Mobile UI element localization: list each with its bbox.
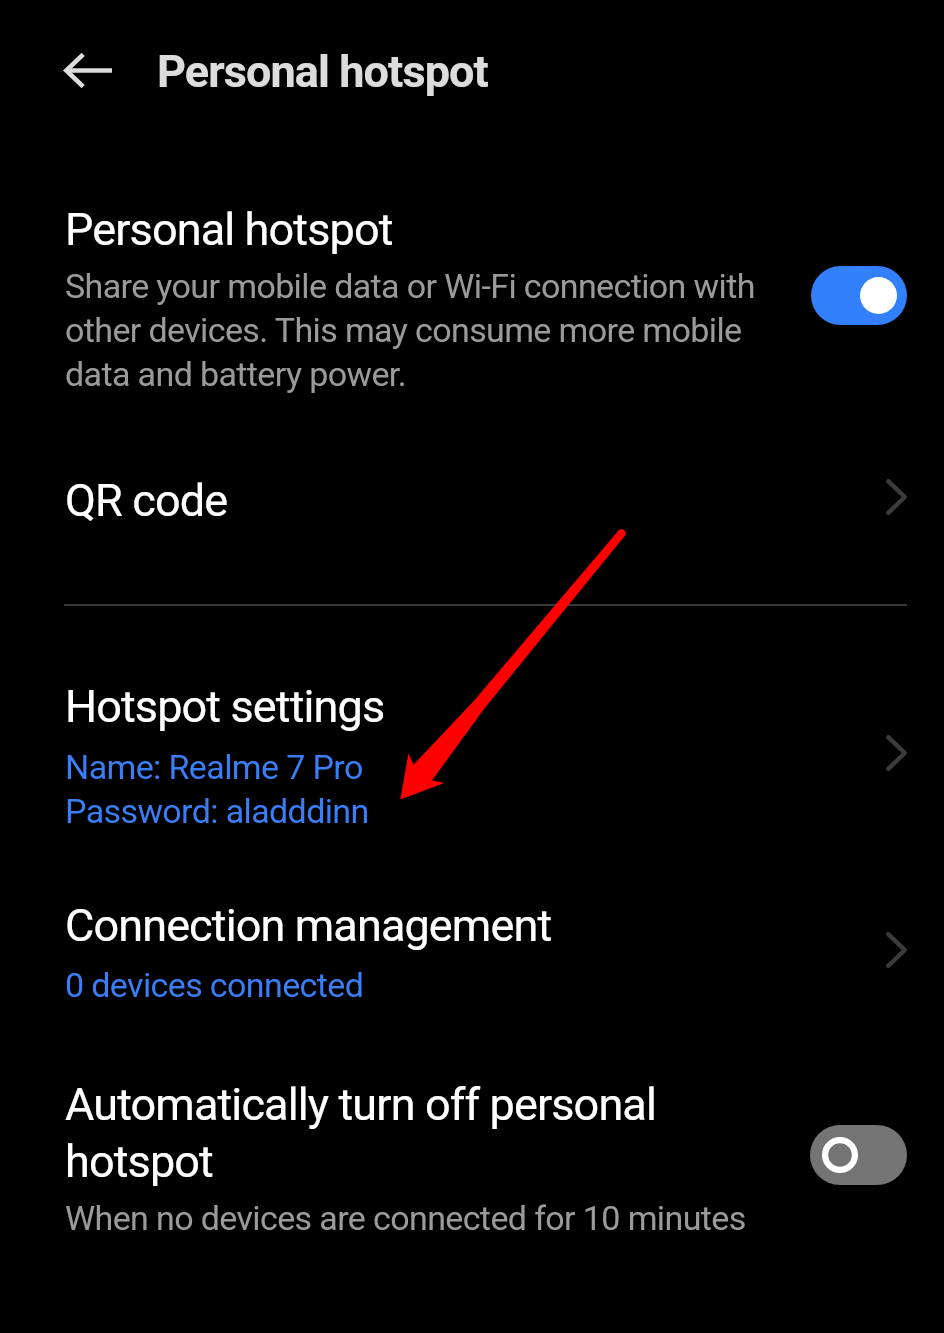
button[interactable]	[0, 660, 944, 840]
staticText: QR code	[65, 474, 228, 527]
staticText: When no devices are connected for 10 min…	[65, 1198, 746, 1238]
button[interactable]	[0, 440, 944, 555]
staticText: Hotspot settings	[65, 680, 385, 733]
staticText: Share your mobile data or Wi-Fi connecti…	[65, 266, 785, 394]
button[interactable]	[0, 870, 944, 1025]
button[interactable]	[0, 1050, 944, 1250]
button[interactable]: Automatically turn off personal hotspot,…	[810, 1125, 907, 1185]
staticText: 0 devices connected	[65, 965, 364, 1005]
staticText: Automatically turn off personal hotspot	[65, 1078, 657, 1188]
staticText: Name: Realme 7 Pro Password: aladddinn	[65, 747, 369, 831]
staticText: Personal hotspot	[157, 45, 488, 98]
button[interactable]	[0, 180, 944, 400]
button[interactable]: Personal hotspot, on	[811, 266, 907, 325]
staticText: Personal hotspot	[65, 203, 393, 256]
staticText: Connection management	[65, 899, 552, 952]
button[interactable]: Back	[42, 24, 134, 116]
